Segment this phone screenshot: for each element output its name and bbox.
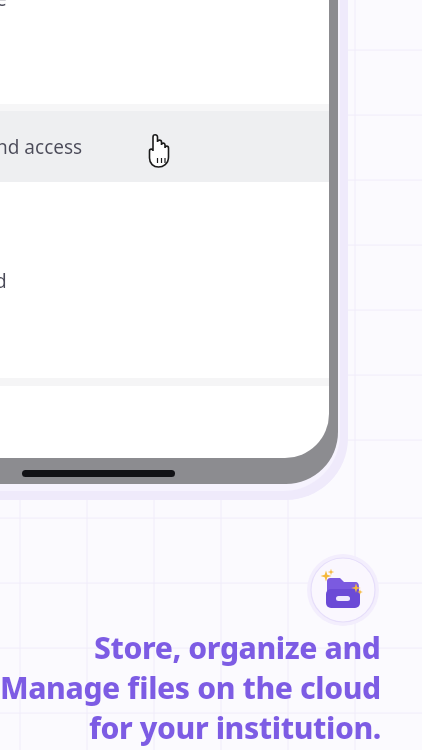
button[interactable]: Share and access	[0, 104, 329, 182]
button[interactable]: File storage	[311, 558, 375, 622]
